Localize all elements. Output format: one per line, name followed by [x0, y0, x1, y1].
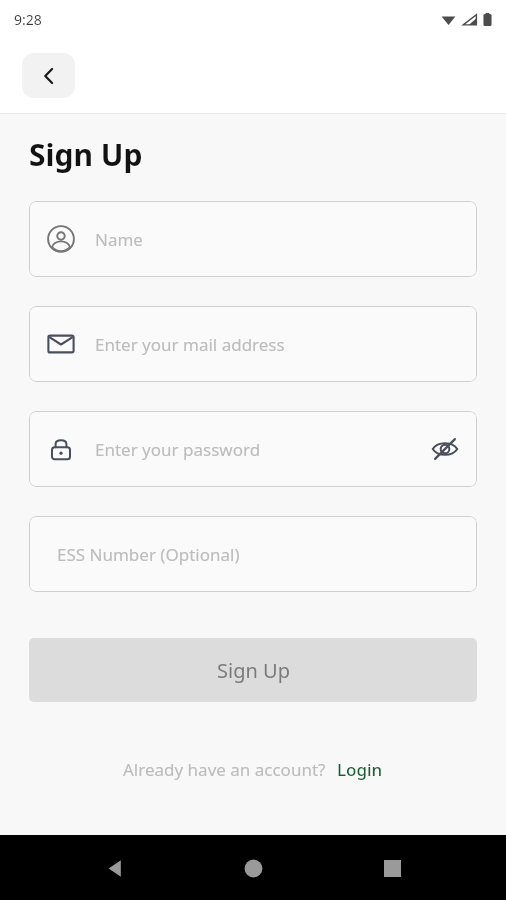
button[interactable]: Recent apps	[368, 844, 416, 892]
button[interactable]: Login	[337, 758, 383, 781]
button[interactable]: Enter your mail address	[29, 306, 477, 382]
button[interactable]: Name	[29, 201, 477, 277]
button[interactable]: Toggle password visibility	[428, 432, 462, 466]
button[interactable]: Enter your password	[29, 411, 477, 487]
staticText: Name	[95, 228, 143, 251]
staticText: Sign Up	[217, 657, 290, 684]
button[interactable]: Back	[22, 53, 75, 98]
staticText: 9:28	[14, 10, 42, 29]
staticText: Already have an account?	[123, 758, 326, 781]
staticText: ESS Number (Optional)	[57, 543, 240, 566]
button[interactable]: ESS Number (Optional)	[29, 516, 477, 592]
staticText: Sign Up	[29, 134, 143, 175]
staticText: Enter your password	[95, 438, 261, 461]
staticText: Login	[337, 758, 383, 781]
button[interactable]: Home	[229, 844, 277, 892]
button[interactable]: Sign Up	[29, 638, 477, 702]
staticText: Enter your mail address	[95, 333, 285, 356]
button[interactable]: Back	[91, 844, 139, 892]
